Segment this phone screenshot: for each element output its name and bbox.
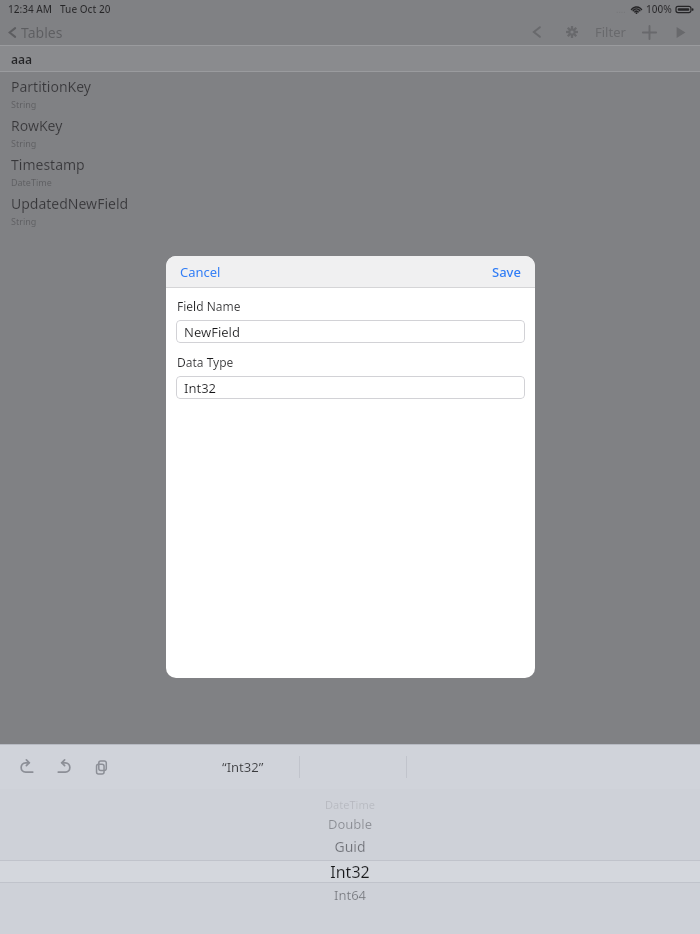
button[interactable]: Int32 xyxy=(176,376,525,399)
staticText: Int32 xyxy=(0,861,700,883)
staticText: Double xyxy=(0,815,700,833)
staticText: UpdatedNewField xyxy=(11,194,129,213)
button[interactable]: Cancel xyxy=(166,257,235,287)
staticText: Save xyxy=(492,263,521,281)
button[interactable]: Filter xyxy=(590,18,631,46)
staticText: Cancel xyxy=(180,263,221,281)
button[interactable]: Redo xyxy=(49,752,79,782)
button[interactable]: UpdatedNewField xyxy=(0,189,700,228)
staticText: aaa xyxy=(11,51,33,67)
staticText: NewField xyxy=(184,323,240,341)
button[interactable]: “Int32” xyxy=(206,751,280,783)
button[interactable]: Tables xyxy=(0,19,73,46)
staticText: Filter xyxy=(595,23,626,41)
button[interactable]: Save xyxy=(478,257,535,287)
button[interactable]: Back xyxy=(524,19,550,45)
staticText: Int32 xyxy=(184,379,217,397)
staticText: String xyxy=(11,137,37,149)
staticText: Tables xyxy=(21,23,63,42)
staticText: DateTime xyxy=(11,176,52,188)
button[interactable]: Undo xyxy=(12,752,42,782)
staticText: String xyxy=(11,98,37,110)
button[interactable]: aaa xyxy=(0,46,700,72)
staticText: 12:34 AM xyxy=(8,2,52,16)
staticText: Data Type xyxy=(177,354,234,370)
staticText: 100% xyxy=(646,2,672,16)
button[interactable]: Add xyxy=(636,19,662,45)
staticText: Timestamp xyxy=(11,155,85,174)
staticText: Guid xyxy=(0,837,700,856)
staticText: PartitionKey xyxy=(11,77,91,96)
staticText: Int64 xyxy=(0,886,700,904)
staticText: Field Name xyxy=(177,298,241,314)
button[interactable]: NewField xyxy=(176,320,525,343)
staticText: “Int32” xyxy=(222,758,264,776)
button[interactable]: Paste xyxy=(86,752,116,782)
staticText: String xyxy=(11,215,37,227)
staticText: Tue Oct 20 xyxy=(60,2,111,16)
button[interactable]: Run xyxy=(667,19,693,45)
button[interactable]: PartitionKey xyxy=(0,72,700,111)
button[interactable]: Timestamp xyxy=(0,150,700,189)
button[interactable]: Int32 xyxy=(0,860,700,883)
button[interactable]: Settings xyxy=(559,19,585,45)
button[interactable]: RowKey xyxy=(0,111,700,150)
staticText: RowKey xyxy=(11,116,63,135)
